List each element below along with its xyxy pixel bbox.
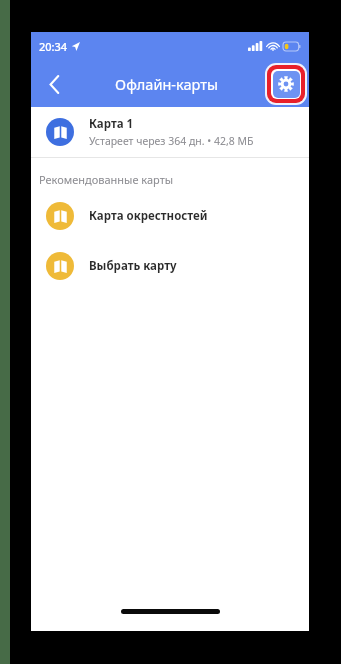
staticText: 20:34 (39, 39, 68, 54)
button[interactable]: Карта окрестностей (31, 197, 309, 235)
button[interactable]: Назад (37, 67, 71, 101)
staticText: Офлайн-карты (115, 74, 218, 94)
staticText: Карта 1 (89, 116, 134, 132)
staticText: Карта окрестностей (89, 208, 208, 224)
staticText: Выбрать карту (89, 258, 177, 274)
button[interactable]: Выбрать карту (31, 247, 309, 285)
staticText: Устареет через 364 дн. • 42,8 МБ (89, 134, 254, 148)
button[interactable]: Настройки (265, 63, 307, 105)
button[interactable]: Карта 1 (31, 113, 309, 151)
staticText: Рекомендованные карты (39, 172, 174, 187)
